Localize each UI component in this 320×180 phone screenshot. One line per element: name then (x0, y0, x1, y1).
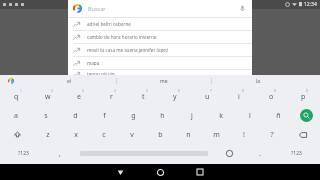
staticText: l (249, 111, 251, 121)
staticText: mapa (87, 60, 100, 66)
button[interactable]: 2 (32, 87, 63, 106)
staticText: u (205, 92, 210, 102)
button[interactable]: s (31, 106, 61, 125)
button[interactable]: ñ (264, 106, 293, 125)
button[interactable]: me (116, 75, 211, 87)
staticText: v (130, 130, 134, 140)
staticText: 9 (274, 89, 276, 93)
staticText: r (110, 92, 113, 102)
button[interactable]: Search (293, 106, 319, 125)
staticText: g (131, 111, 136, 121)
staticText: 12:34 (304, 1, 317, 8)
button[interactable]: k (206, 106, 235, 125)
button[interactable]: z (34, 125, 62, 144)
button[interactable]: ?123 (274, 144, 319, 163)
staticText: cambio de hora horario invierno (87, 34, 157, 40)
staticText: 0 (306, 89, 308, 93)
staticText: 3 (82, 89, 84, 93)
button[interactable]: Backspace (286, 125, 319, 144)
button[interactable]: 1 (1, 87, 32, 106)
button[interactable]: Shift (1, 125, 34, 144)
staticText: adriel beltri osborne (87, 21, 131, 27)
staticText: me (160, 78, 168, 85)
staticText: la (256, 78, 261, 85)
button[interactable]: movil tu casa me suena jennifer lopez (68, 44, 252, 56)
button[interactable]: Voice search (238, 4, 247, 13)
button[interactable]: tengo gis vip (68, 70, 252, 78)
button[interactable]: h (148, 106, 177, 125)
staticText: j (191, 111, 193, 121)
button[interactable]: 5 (127, 87, 159, 106)
staticText: q (14, 92, 19, 102)
button[interactable]: 3 (63, 87, 95, 106)
staticText: ? (270, 130, 274, 140)
button[interactable]: 0 (287, 87, 319, 106)
staticText: e (77, 92, 81, 102)
button[interactable]: el (22, 75, 116, 87)
button[interactable]: l (235, 106, 264, 125)
button[interactable]: ?123 (1, 144, 46, 163)
staticText: y (173, 92, 177, 102)
staticText: ?123 (291, 150, 302, 157)
staticText: 4 (114, 89, 116, 93)
staticText: d (73, 111, 78, 121)
staticText: p (301, 92, 306, 102)
button[interactable]: c (90, 125, 118, 144)
button[interactable]: 8 (223, 87, 255, 106)
staticText: . (259, 149, 261, 159)
staticText: el (67, 78, 72, 85)
button[interactable]: f (90, 106, 119, 125)
staticText: b (158, 130, 163, 140)
staticText: 2 (51, 89, 53, 93)
button[interactable]: cambio de hora horario invierno (68, 31, 252, 43)
staticText: c (102, 130, 106, 140)
button[interactable]: Recents (187, 164, 213, 180)
staticText: w (45, 92, 51, 102)
staticText: ?123 (18, 150, 29, 157)
button[interactable]: a (1, 106, 31, 125)
staticText: t (142, 92, 145, 102)
staticText: h (160, 111, 165, 121)
button[interactable]: Back (107, 164, 133, 180)
button[interactable]: v (118, 125, 146, 144)
staticText: 1 (20, 89, 22, 93)
button[interactable]: Emoji (213, 144, 246, 163)
button[interactable]: b (146, 125, 174, 144)
button[interactable]: mapa (68, 57, 252, 69)
button[interactable]: ? (258, 125, 286, 144)
staticText: Buscar (88, 5, 106, 12)
button[interactable]: Home (147, 164, 173, 180)
button[interactable]: 7 (191, 87, 223, 106)
staticText: s (44, 111, 48, 121)
button[interactable]: Space (74, 144, 213, 163)
staticText: ñ (276, 111, 281, 121)
staticText: 6 (178, 89, 180, 93)
staticText: a (14, 111, 18, 121)
staticText: z (46, 130, 50, 140)
button[interactable]: m (202, 125, 230, 144)
staticText: , (59, 149, 61, 159)
staticText: m (213, 130, 220, 140)
staticText: movil tu casa me suena jennifer lopez (87, 47, 169, 53)
staticText: x (74, 130, 78, 140)
staticText: k (219, 111, 223, 121)
button[interactable]: la (211, 75, 306, 87)
button[interactable]: Buscar (68, 0, 252, 17)
staticText: 8 (242, 89, 244, 93)
button[interactable]: j (177, 106, 206, 125)
button[interactable]: ! (230, 125, 258, 144)
button[interactable]: x (62, 125, 90, 144)
button[interactable]: n (174, 125, 202, 144)
button[interactable]: 6 (159, 87, 191, 106)
button[interactable]: d (61, 106, 90, 125)
button[interactable]: adriel beltri osborne (68, 18, 252, 30)
button[interactable]: , (46, 144, 74, 163)
button[interactable]: 4 (95, 87, 127, 106)
staticText: 5 (146, 89, 148, 93)
staticText: i (238, 92, 240, 102)
button[interactable]: g (119, 106, 148, 125)
staticText: n (186, 130, 191, 140)
staticText: 7 (210, 89, 212, 93)
button[interactable]: 9 (255, 87, 287, 106)
